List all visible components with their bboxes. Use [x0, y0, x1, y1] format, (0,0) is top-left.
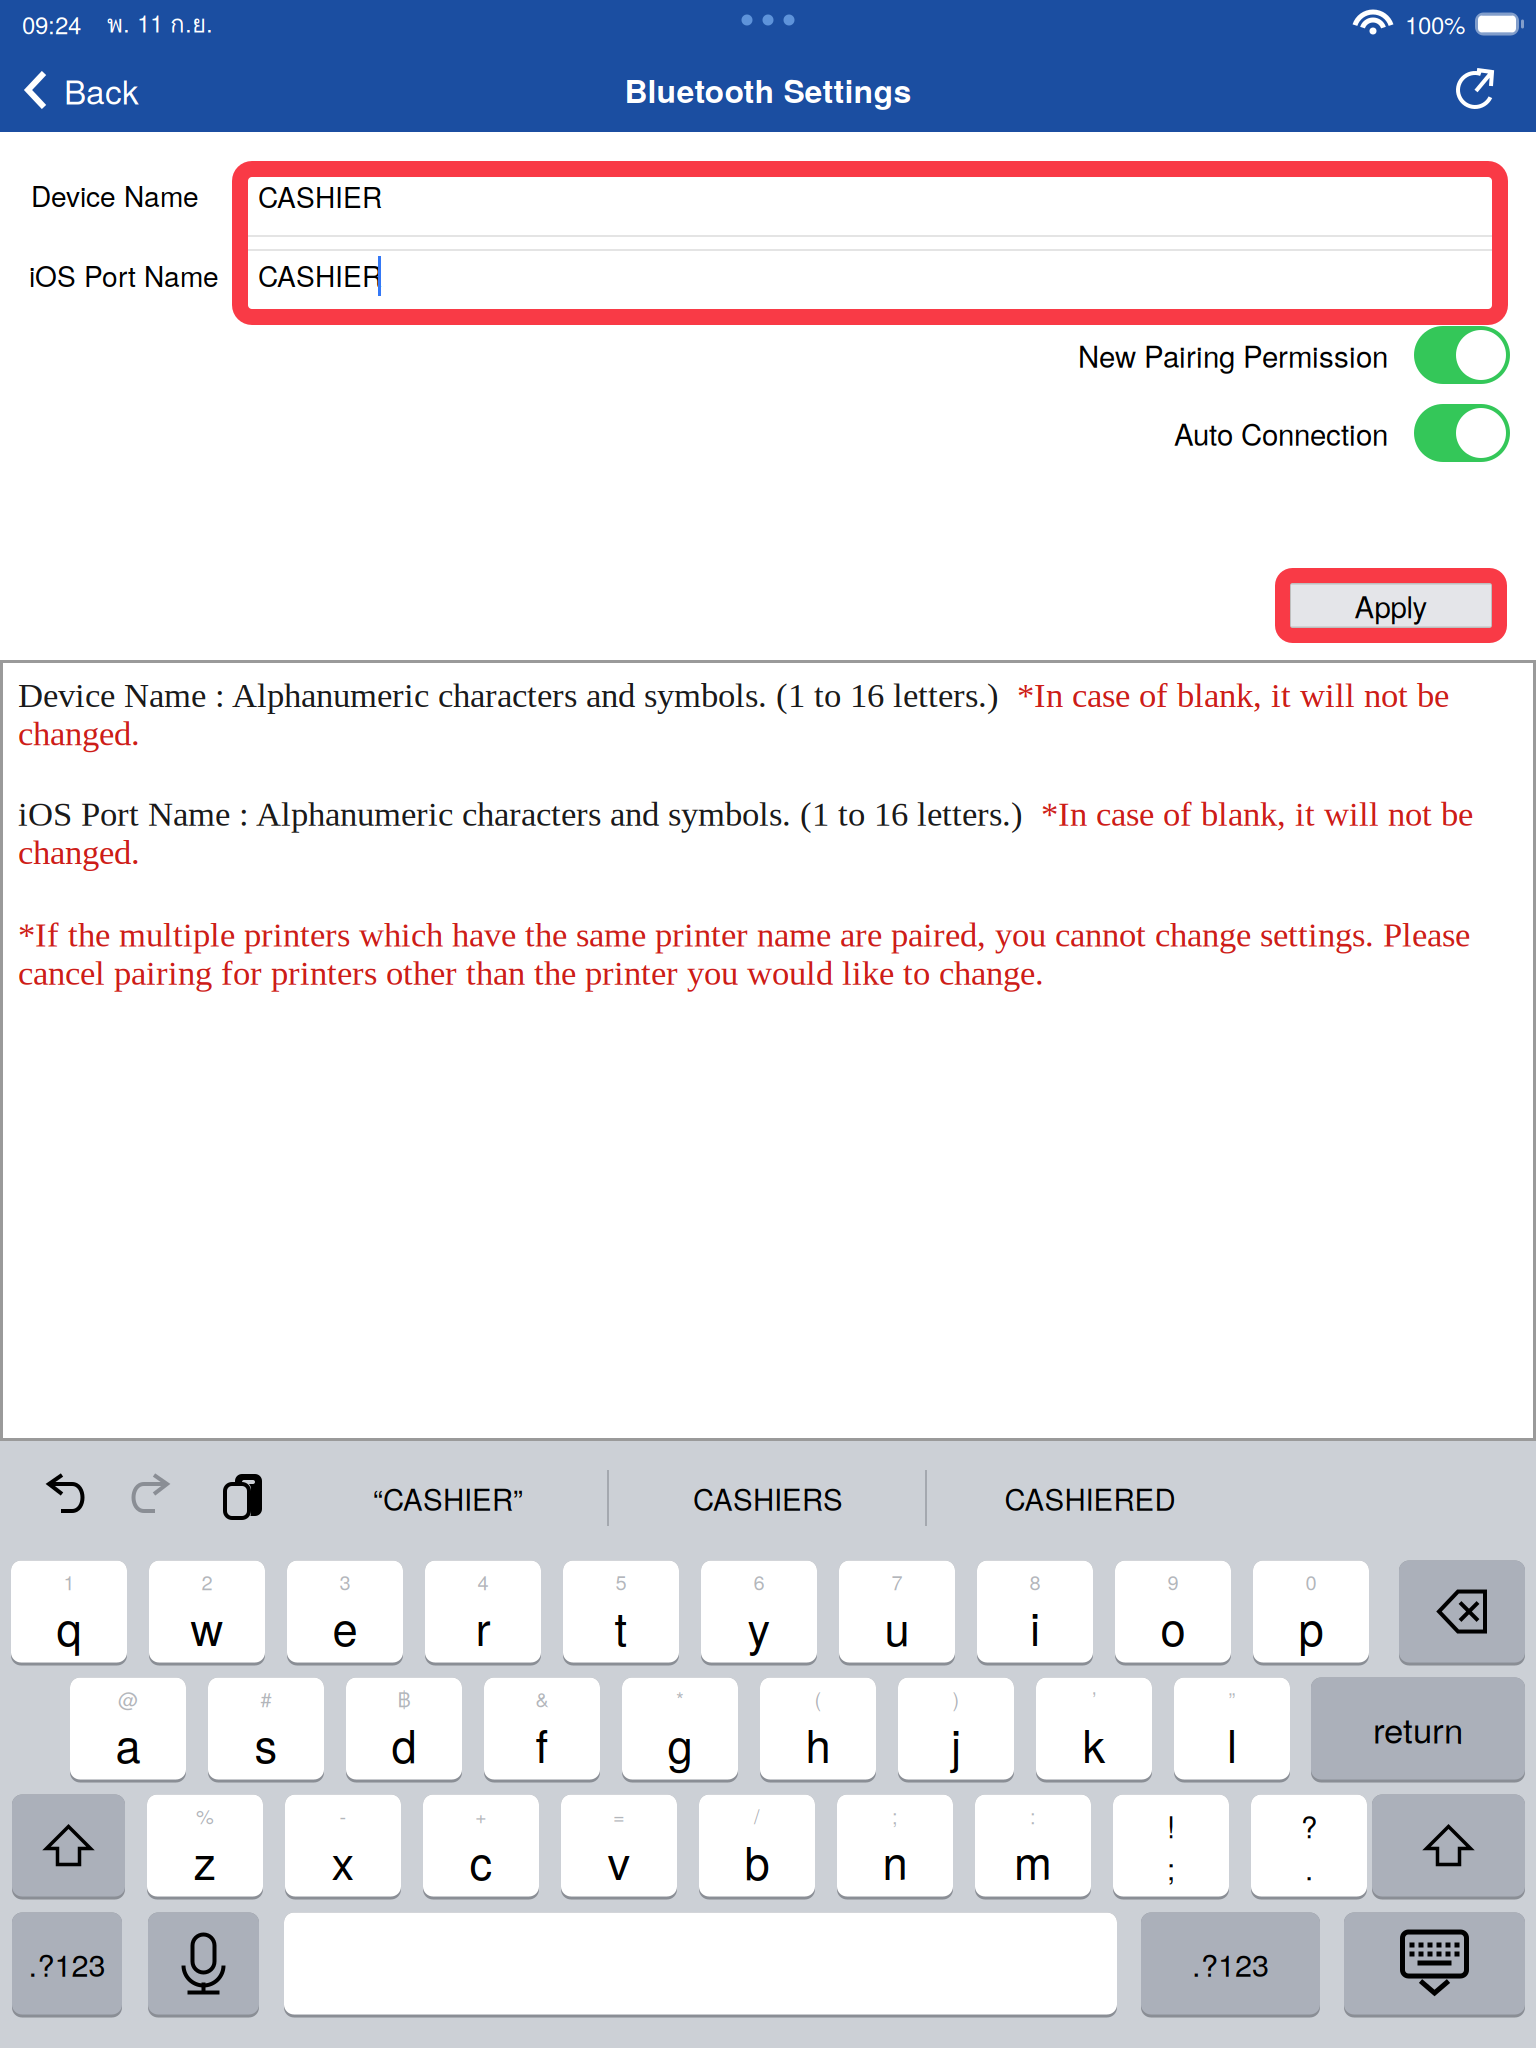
button[interactable]: *: [622, 1676, 738, 1781]
button[interactable]: .?123: [12, 1911, 122, 2016]
button[interactable]: Toggle: [1414, 326, 1510, 384]
staticText: ’: [1092, 1684, 1096, 1713]
staticText: CASHIERED: [1004, 1477, 1175, 1519]
button[interactable]: 5: [563, 1559, 679, 1664]
staticText: ”: [1228, 1684, 1235, 1713]
staticText: Apply: [1354, 584, 1427, 626]
button[interactable]: Delete: [1399, 1559, 1525, 1664]
button[interactable]: Paste: [207, 1461, 267, 1529]
staticText: Auto Connection: [1174, 412, 1388, 454]
button[interactable]: =: [561, 1793, 677, 1898]
staticText: ): [952, 1684, 959, 1713]
button[interactable]: Toggle: [1414, 404, 1510, 462]
staticText: c: [469, 1828, 492, 1893]
staticText: 09:24: [22, 7, 81, 41]
button[interactable]: 2: [149, 1559, 265, 1664]
staticText: 7: [891, 1567, 902, 1596]
button[interactable]: Dictation: [148, 1911, 259, 2016]
staticText: =: [613, 1801, 625, 1830]
button[interactable]: .?123: [1141, 1911, 1320, 2016]
button[interactable]: ): [898, 1676, 1014, 1781]
staticText: e: [332, 1594, 357, 1659]
staticText: ฿: [397, 1684, 410, 1713]
staticText: w: [190, 1594, 223, 1659]
button[interactable]: -: [285, 1793, 401, 1898]
button[interactable]: Hide keyboard: [1344, 1911, 1525, 2016]
button[interactable]: +: [423, 1793, 539, 1898]
staticText: o: [1160, 1594, 1185, 1659]
button[interactable]: ฿: [346, 1676, 462, 1781]
button[interactable]: return: [1311, 1676, 1525, 1781]
button[interactable]: Undo: [36, 1465, 96, 1525]
staticText: u: [884, 1594, 909, 1659]
staticText: Device Name: [31, 175, 199, 215]
staticText: 8: [1029, 1567, 1040, 1596]
button[interactable]: Redo: [120, 1465, 180, 1525]
staticText: iOS Port Name: [29, 255, 219, 295]
staticText: g: [667, 1711, 692, 1776]
staticText: z: [193, 1828, 216, 1893]
staticText: CASHIERS: [693, 1477, 843, 1519]
button[interactable]: space: [284, 1911, 1117, 2016]
button[interactable]: (: [760, 1676, 876, 1781]
staticText: 100%: [1405, 7, 1465, 41]
button[interactable]: &: [484, 1676, 600, 1781]
staticText: i: [1030, 1594, 1040, 1659]
button[interactable]: @: [70, 1676, 186, 1781]
staticText: -: [339, 1801, 346, 1830]
staticText: %: [196, 1801, 214, 1830]
staticText: .?123: [28, 1941, 105, 1985]
staticText: y: [747, 1594, 770, 1659]
staticText: v: [607, 1828, 630, 1893]
staticText: s: [254, 1711, 277, 1776]
button[interactable]: 4: [425, 1559, 541, 1664]
staticText: New Pairing Permission: [1078, 334, 1388, 376]
button[interactable]: CASHIERS: [612, 1467, 924, 1529]
staticText: 3: [339, 1567, 350, 1596]
button[interactable]: Shift: [12, 1793, 125, 1898]
button[interactable]: 8: [977, 1559, 1093, 1664]
button[interactable]: CASHIERED: [930, 1467, 1250, 1529]
button[interactable]: 1: [11, 1559, 127, 1664]
staticText: /: [754, 1801, 760, 1830]
staticText: h: [805, 1711, 830, 1776]
button[interactable]: 3: [287, 1559, 403, 1664]
button[interactable]: %: [147, 1793, 263, 1898]
button[interactable]: Apply: [1275, 568, 1507, 643]
staticText: !: [1167, 1804, 1175, 1846]
button[interactable]: ;: [837, 1793, 953, 1898]
staticText: 4: [477, 1567, 488, 1596]
staticText: ;: [892, 1801, 898, 1830]
staticText: q: [56, 1594, 81, 1659]
staticText: “CASHIER”: [373, 1477, 523, 1519]
staticText: :: [1030, 1801, 1036, 1830]
button[interactable]: 0: [1253, 1559, 1369, 1664]
staticText: l: [1227, 1711, 1237, 1776]
button[interactable]: ’: [1036, 1676, 1152, 1781]
staticText: iOS Port Name : Alphanumeric characters …: [18, 795, 1473, 872]
button[interactable]: 6: [701, 1559, 817, 1664]
button[interactable]: “CASHIER”: [298, 1467, 598, 1529]
button[interactable]: :: [975, 1793, 1091, 1898]
staticText: (: [814, 1684, 821, 1713]
button[interactable]: 7: [839, 1559, 955, 1664]
button[interactable]: Refresh: [1430, 48, 1520, 132]
staticText: 1: [63, 1567, 74, 1596]
staticText: &: [535, 1684, 548, 1713]
staticText: m: [1014, 1828, 1052, 1893]
staticText: ?: [1301, 1804, 1317, 1846]
button[interactable]: ?: [1251, 1793, 1367, 1898]
staticText: 6: [753, 1567, 764, 1596]
staticText: a: [115, 1711, 140, 1776]
button[interactable]: Back: [0, 48, 157, 132]
button[interactable]: #: [208, 1676, 324, 1781]
staticText: 0: [1305, 1567, 1316, 1596]
staticText: #: [260, 1684, 271, 1713]
button[interactable]: /: [699, 1793, 815, 1898]
staticText: Device Name : Alphanumeric characters an…: [18, 676, 1449, 753]
button[interactable]: !: [1113, 1793, 1229, 1898]
staticText: +: [475, 1801, 487, 1830]
button[interactable]: 9: [1115, 1559, 1231, 1664]
button[interactable]: Shift: [1372, 1793, 1525, 1898]
button[interactable]: ”: [1174, 1676, 1290, 1781]
